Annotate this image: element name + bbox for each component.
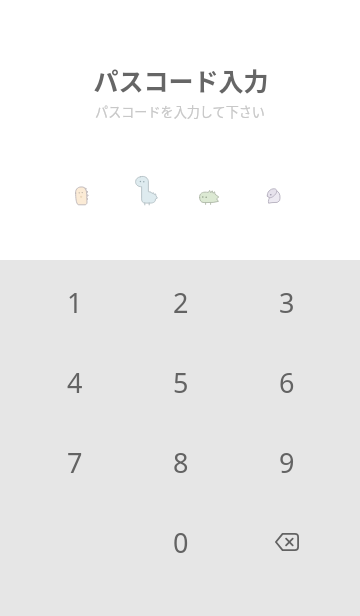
staticText: 2 (173, 284, 189, 321)
staticText: 1 (67, 284, 83, 321)
button[interactable]: 6 (234, 342, 340, 422)
staticText: 6 (279, 364, 295, 401)
button[interactable]: 3 (234, 262, 340, 342)
staticText: 7 (67, 444, 83, 481)
button[interactable]: 1 (22, 262, 128, 342)
staticText: パスコードを入力して下さい (95, 102, 265, 121)
button[interactable]: 4 (22, 342, 128, 422)
staticText: 5 (173, 364, 189, 401)
button[interactable]: Delete (234, 502, 340, 582)
staticText: 4 (67, 364, 83, 401)
button[interactable]: 2 (128, 262, 234, 342)
button[interactable]: 9 (234, 422, 340, 502)
staticText: パスコード入力 (93, 62, 269, 98)
button[interactable]: 8 (128, 422, 234, 502)
button[interactable]: 5 (128, 342, 234, 422)
staticText: 0 (173, 524, 189, 561)
staticText: 3 (279, 284, 295, 321)
button[interactable]: 7 (22, 422, 128, 502)
staticText: 8 (173, 444, 189, 481)
button[interactable]: 0 (128, 502, 234, 582)
staticText: 9 (279, 444, 295, 481)
other: Delete (267, 522, 307, 562)
